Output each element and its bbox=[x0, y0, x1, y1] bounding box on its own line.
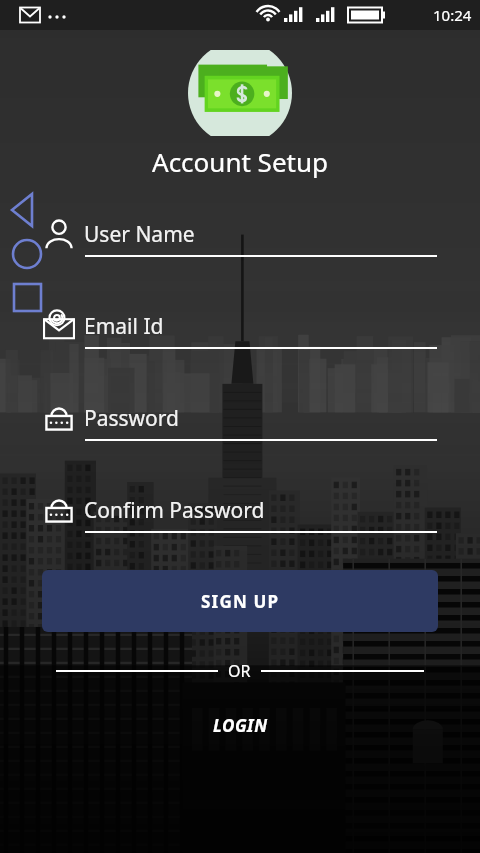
staticText: Password bbox=[84, 404, 179, 433]
staticText: Confirm Password bbox=[84, 496, 265, 525]
staticText: OR bbox=[228, 660, 251, 682]
button[interactable]: User Name bbox=[0, 217, 480, 257]
staticText: SIGN UP bbox=[201, 590, 280, 613]
other: Navigation keys bbox=[6, 186, 52, 336]
staticText: Email Id bbox=[84, 312, 164, 341]
button[interactable]: SIGN UP bbox=[42, 570, 438, 632]
staticText: User Name bbox=[84, 220, 195, 249]
button[interactable]: LOGIN bbox=[195, 710, 286, 741]
button[interactable]: Confirm Password bbox=[0, 493, 480, 533]
staticText: LOGIN bbox=[213, 714, 268, 737]
staticText: Account Setup bbox=[0, 144, 480, 179]
button[interactable]: Email Id bbox=[0, 309, 480, 349]
button[interactable]: Password bbox=[0, 401, 480, 441]
staticText: 10:24 bbox=[433, 5, 472, 25]
